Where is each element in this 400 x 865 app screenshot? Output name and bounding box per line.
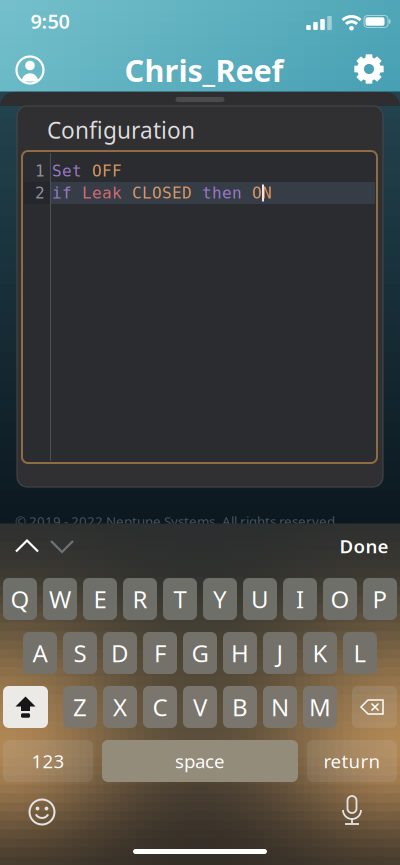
staticText: S	[73, 637, 86, 669]
button[interactable]: return	[307, 740, 397, 782]
staticText: M	[309, 691, 331, 723]
staticText: Chris_Reef	[124, 50, 283, 90]
button[interactable]: Previous field	[12, 536, 42, 556]
staticText: E	[93, 583, 106, 615]
staticText: N	[271, 691, 289, 723]
button[interactable]: Emoji	[27, 797, 57, 827]
button[interactable]: G	[183, 632, 217, 674]
staticText: U	[251, 583, 269, 615]
staticText: 123	[31, 749, 64, 773]
staticText: Done	[339, 534, 388, 558]
staticText: 2	[35, 184, 45, 202]
button[interactable]: Shift	[3, 686, 48, 728]
button[interactable]: A	[23, 632, 57, 674]
staticText: Set	[52, 162, 82, 180]
staticText: Configuration	[47, 115, 195, 145]
button[interactable]: N	[263, 686, 297, 728]
staticText: L	[353, 637, 366, 669]
button[interactable]: Z	[63, 686, 97, 728]
button[interactable]: Next field	[47, 536, 77, 556]
button[interactable]: V	[183, 686, 217, 728]
staticText: 9:50	[30, 8, 69, 34]
staticText: X	[113, 691, 127, 723]
staticText: then	[192, 184, 242, 202]
button[interactable]: J	[263, 632, 297, 674]
staticText: T	[173, 583, 186, 615]
staticText: C	[152, 691, 167, 723]
button[interactable]: P	[363, 578, 397, 620]
staticText: return	[323, 749, 380, 773]
button[interactable]: C	[143, 686, 177, 728]
button[interactable]: Done	[339, 534, 388, 558]
staticText: W	[49, 583, 71, 615]
button[interactable]: 123	[3, 740, 93, 782]
staticText: O	[330, 583, 349, 615]
button[interactable]: K	[303, 632, 337, 674]
staticText: B	[232, 691, 248, 723]
button[interactable]: I	[283, 578, 317, 620]
button[interactable]: Dictation	[340, 795, 364, 829]
button[interactable]: L	[343, 632, 377, 674]
staticText: J	[276, 637, 283, 669]
staticText: © 2019 - 2022 Neptune Systems. All right…	[15, 512, 339, 530]
button[interactable]: Delete	[352, 686, 397, 728]
button[interactable]: Q	[3, 578, 37, 620]
button[interactable]: S	[63, 632, 97, 674]
staticText: 1	[35, 162, 45, 180]
staticText: ON	[242, 184, 272, 202]
staticText: R	[132, 583, 147, 615]
button[interactable]: E	[83, 578, 117, 620]
button[interactable]: D	[103, 632, 137, 674]
staticText: H	[231, 637, 249, 669]
button[interactable]: H	[223, 632, 257, 674]
button[interactable]: T	[163, 578, 197, 620]
button[interactable]: O	[323, 578, 357, 620]
staticText: V	[193, 691, 207, 723]
button[interactable]: Profile	[10, 50, 50, 90]
button[interactable]: B	[223, 686, 257, 728]
staticText: D	[111, 637, 129, 669]
staticText: Leak	[72, 184, 122, 202]
button[interactable]: U	[243, 578, 277, 620]
staticText: K	[312, 637, 327, 669]
button[interactable]: X	[103, 686, 137, 728]
staticText: Y	[213, 583, 227, 615]
staticText: if	[52, 184, 72, 202]
button[interactable]: space	[102, 740, 298, 782]
staticText: A	[32, 637, 47, 669]
staticText: OFF	[82, 162, 122, 180]
button[interactable]: M	[303, 686, 337, 728]
staticText: P	[372, 583, 387, 615]
staticText: space	[175, 749, 225, 773]
staticText: G	[191, 637, 208, 669]
staticText: I	[296, 583, 304, 615]
staticText: Q	[10, 583, 29, 615]
staticText: CLOSED	[122, 184, 192, 202]
staticText: Z	[73, 691, 87, 723]
button[interactable]: F	[143, 632, 177, 674]
button[interactable]: Settings	[349, 49, 389, 89]
button[interactable]: W	[43, 578, 77, 620]
button[interactable]: Y	[203, 578, 237, 620]
staticText: F	[154, 637, 166, 669]
button[interactable]: R	[123, 578, 157, 620]
